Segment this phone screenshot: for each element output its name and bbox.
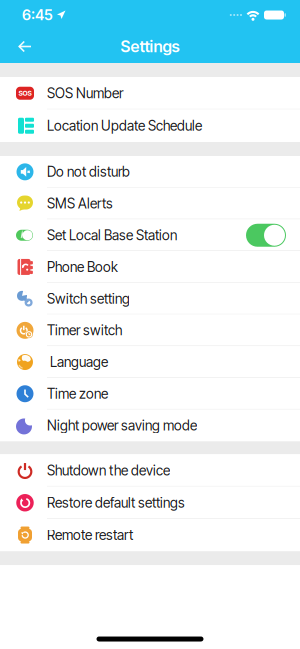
staticText: Restore default settings	[47, 494, 185, 511]
staticText: SOS	[18, 89, 31, 97]
staticText: Set Local Base Station	[47, 227, 177, 243]
staticText: Timer switch	[47, 322, 122, 339]
button[interactable]: Shutdown the device	[0, 454, 300, 487]
staticText: Language	[47, 354, 108, 370]
button[interactable]: Phone Book	[0, 251, 300, 283]
staticText: SOS Number	[47, 85, 123, 101]
button[interactable]: Time zone	[0, 378, 300, 410]
button[interactable]: Remote restart	[0, 519, 300, 551]
staticText: Shutdown the device	[47, 462, 170, 479]
button[interactable]: Back	[0, 32, 32, 60]
staticText: 6:45	[22, 6, 53, 24]
button[interactable]: SOS	[0, 77, 300, 109]
staticText: Switch setting	[47, 290, 130, 307]
button[interactable]: Set Local Base Station	[0, 219, 300, 251]
button[interactable]: Language	[0, 346, 300, 378]
button[interactable]: Switch setting	[0, 283, 300, 314]
button[interactable]: Location Update Schedule	[0, 109, 300, 142]
staticText: Night power saving mode	[47, 417, 197, 434]
staticText: Phone Book	[47, 259, 118, 275]
button[interactable]: Timer switch	[0, 314, 300, 346]
staticText: Time zone	[47, 385, 108, 402]
button[interactable]: SMS Alerts	[0, 188, 300, 219]
button[interactable]: Restore default settings	[0, 487, 300, 519]
staticText: Remote restart	[47, 527, 133, 543]
button[interactable]: Night power saving mode	[0, 410, 300, 441]
staticText: Do not disturb	[47, 163, 130, 180]
staticText: Location Update Schedule	[47, 117, 202, 134]
staticText: Settings	[120, 37, 179, 56]
button[interactable]: Do not disturb	[0, 156, 300, 188]
staticText: SMS Alerts	[47, 195, 113, 212]
